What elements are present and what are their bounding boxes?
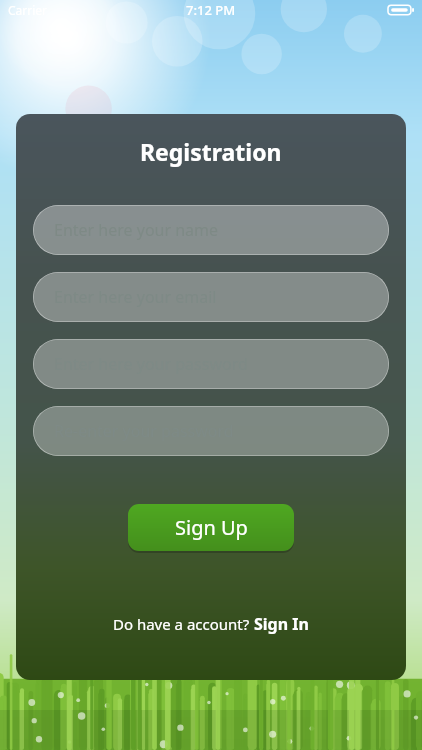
staticText: Sign Up bbox=[175, 514, 248, 541]
staticText: Do have a account? bbox=[113, 614, 254, 634]
button[interactable]: Enter here your email bbox=[33, 272, 389, 322]
button[interactable]: Do have a account? bbox=[107, 609, 315, 639]
button[interactable]: Sign Up bbox=[128, 504, 294, 551]
button[interactable]: Enter here your name bbox=[33, 205, 389, 255]
staticText: Sign In bbox=[254, 613, 309, 635]
staticText: 7:12 PM bbox=[186, 1, 236, 19]
staticText: Enter here your name bbox=[54, 219, 219, 241]
button[interactable]: Enter here your password bbox=[33, 339, 389, 389]
button[interactable]: Re-enter your password bbox=[33, 406, 389, 456]
staticText: Registration bbox=[140, 136, 282, 167]
staticText: Carrier bbox=[8, 2, 48, 18]
